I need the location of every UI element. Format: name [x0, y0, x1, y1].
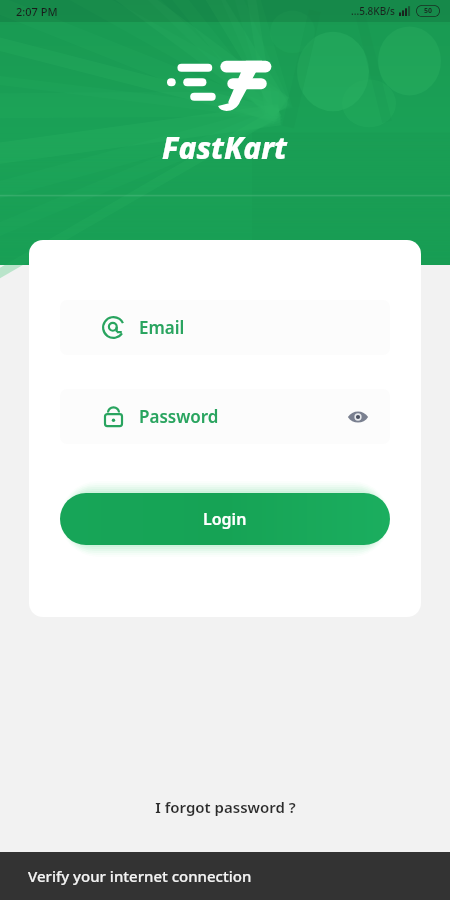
button[interactable]: Show password: [344, 403, 372, 431]
staticText: ...5.8KB/s: [351, 4, 395, 18]
staticText: Password: [139, 405, 219, 428]
staticText: Email: [139, 316, 185, 339]
button[interactable]: I forgot password ?: [143, 793, 308, 821]
staticText: FastKart: [162, 127, 288, 168]
staticText: Login: [203, 508, 247, 530]
staticText: 2:07 PM: [16, 4, 58, 19]
staticText: 50: [424, 6, 433, 16]
staticText: I forgot password ?: [155, 797, 296, 817]
staticText: Verify your internet connection: [28, 866, 252, 886]
button[interactable]: Verify your internet connection: [0, 852, 450, 900]
button[interactable]: Email: [60, 300, 390, 355]
button[interactable]: Password: [60, 389, 390, 444]
button[interactable]: Login: [60, 493, 390, 545]
